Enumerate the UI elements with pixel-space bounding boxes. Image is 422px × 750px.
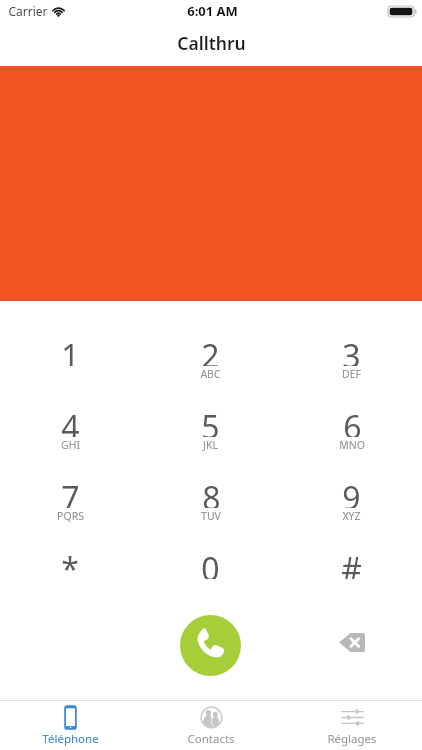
button[interactable]: #	[281, 547, 422, 618]
staticText: GHI	[61, 438, 80, 452]
staticText: ABC	[200, 367, 221, 381]
staticText: 9	[342, 476, 361, 508]
staticText: 5	[201, 405, 220, 437]
button[interactable]: 9	[281, 476, 422, 547]
staticText: 0	[201, 547, 220, 579]
staticText: Réglages	[327, 731, 377, 747]
staticText: 1	[61, 334, 80, 366]
button[interactable]: Backspace	[329, 620, 373, 664]
staticText: TUV	[201, 509, 221, 523]
staticText: 7	[61, 476, 80, 508]
button[interactable]: 5	[140, 405, 281, 476]
staticText: 4	[61, 405, 80, 437]
button[interactable]: Téléphone	[0, 701, 140, 750]
button[interactable]: 2	[140, 334, 281, 405]
staticText: 8	[202, 476, 221, 508]
button[interactable]: 8	[140, 476, 281, 547]
staticText: 2	[201, 334, 220, 366]
staticText: #	[341, 547, 362, 579]
button[interactable]: 3	[281, 334, 422, 405]
staticText: XYZ	[342, 509, 361, 523]
staticText: Carrier	[8, 3, 48, 19]
staticText: DEF	[342, 367, 361, 381]
staticText: Téléphone	[42, 731, 99, 747]
staticText: 6	[343, 405, 362, 437]
button[interactable]: *	[0, 547, 140, 618]
staticText: MNO	[339, 438, 365, 452]
button[interactable]: 7	[0, 476, 140, 547]
button[interactable]: Contacts	[140, 701, 281, 750]
button[interactable]: 6	[281, 405, 422, 476]
staticText: *	[61, 547, 79, 579]
staticText: Callthru	[177, 31, 246, 55]
staticText: PQRS	[57, 509, 84, 523]
staticText: Contacts	[187, 731, 235, 747]
staticText: 3	[342, 334, 361, 366]
button[interactable]: 1	[0, 334, 140, 405]
staticText: JKL	[203, 438, 218, 452]
button[interactable]: Call	[180, 615, 241, 676]
button[interactable]: 4	[0, 405, 140, 476]
button[interactable]: 0	[140, 547, 281, 618]
staticText: 6:01 AM	[187, 2, 238, 20]
button[interactable]: Réglages	[281, 701, 422, 750]
